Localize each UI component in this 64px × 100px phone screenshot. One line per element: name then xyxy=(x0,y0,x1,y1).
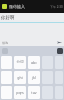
staticText: 微信输入 xyxy=(9,4,25,9)
button[interactable]: tuv xyxy=(28,86,40,99)
staticText: 下午 2:30 xyxy=(50,5,63,9)
button[interactable]: pqrs xyxy=(14,86,26,99)
button[interactable]: Voice input xyxy=(57,48,63,54)
button[interactable]: Send xyxy=(56,40,63,45)
button[interactable]: Keyboard settings xyxy=(2,48,8,54)
staticText: ghi xyxy=(17,75,23,80)
button[interactable]: abc xyxy=(28,56,40,69)
staticText: jkl xyxy=(32,75,36,80)
button[interactable]: jkl xyxy=(28,71,40,84)
staticText: 分词 xyxy=(16,60,24,65)
staticText: pqrs xyxy=(16,90,24,95)
staticText: tuv xyxy=(31,90,37,95)
button[interactable]: App icon xyxy=(2,4,7,9)
staticText: 你好啊 xyxy=(1,15,15,21)
button[interactable]: ghi xyxy=(14,71,26,84)
staticText: 候选 xyxy=(2,41,8,45)
staticText: abc xyxy=(31,60,37,65)
button[interactable]: 分词 xyxy=(14,56,26,69)
